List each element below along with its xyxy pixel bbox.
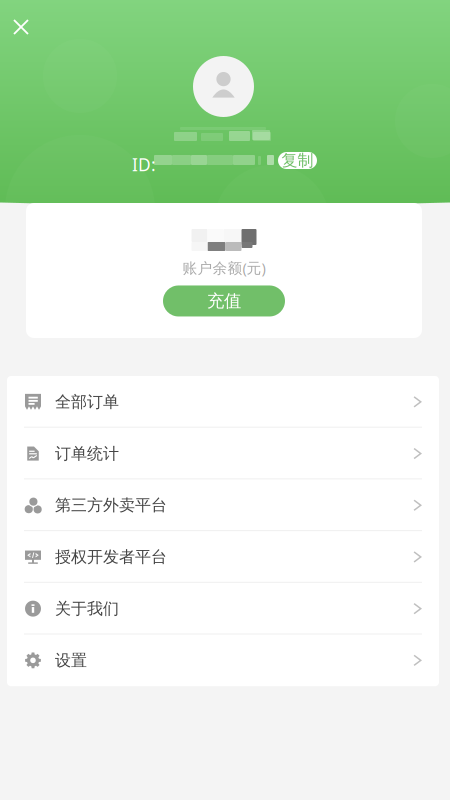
staticText: 授权开发者平台 [55, 547, 167, 567]
button[interactable]: 复制 [278, 152, 317, 169]
staticText: 订单统计 [55, 444, 119, 463]
button[interactable]: 关于我们 [7, 583, 439, 634]
staticText: ID: [132, 153, 156, 176]
staticText: 充值 [207, 290, 241, 312]
button[interactable]: 订单统计 [7, 428, 439, 479]
button[interactable]: 第三方外卖平台 [7, 479, 439, 531]
staticText: 全部订单 [55, 392, 119, 412]
staticText: 关于我们 [55, 599, 119, 618]
staticText: 账户余额(元) [182, 258, 265, 277]
staticText: 设置 [55, 650, 87, 670]
button[interactable]: 授权开发者平台 [7, 531, 439, 583]
staticText: 第三方外卖平台 [55, 495, 167, 515]
button[interactable]: 设置 [7, 634, 439, 686]
button[interactable]: 全部订单 [7, 376, 439, 428]
staticText: 复制 [281, 151, 313, 170]
button[interactable]: Close [1, 7, 41, 47]
button[interactable]: 充值 [163, 285, 285, 316]
